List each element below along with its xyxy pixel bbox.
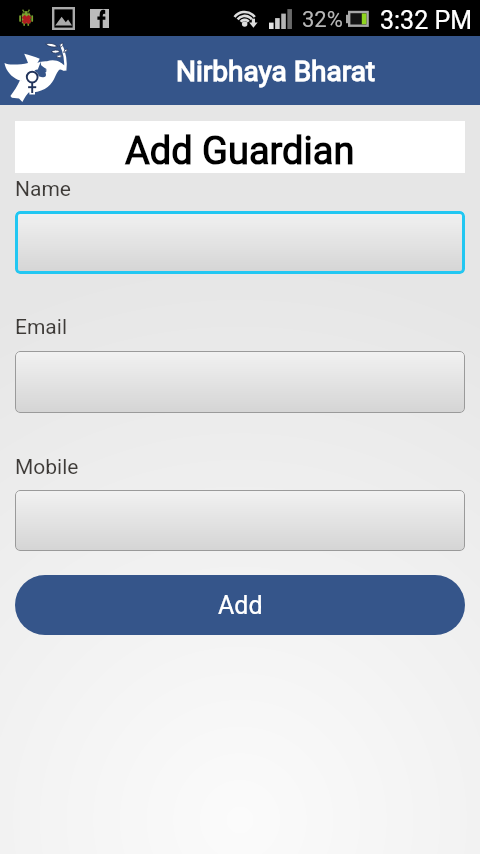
staticText: Add Guardian	[125, 129, 355, 174]
staticText: 32%	[302, 7, 343, 33]
button[interactable]: Text field	[15, 351, 465, 413]
button[interactable]: Text field	[15, 490, 465, 551]
staticText: 3:32 PM	[380, 6, 473, 35]
staticText: Nirbhaya Bharat	[176, 55, 376, 88]
button[interactable]: Text field	[15, 211, 465, 274]
staticText: Mobile	[15, 455, 79, 480]
staticText: Add	[218, 591, 263, 620]
button[interactable]: Add	[15, 575, 465, 635]
staticText: Name	[15, 177, 71, 202]
staticText: Email	[15, 315, 67, 340]
